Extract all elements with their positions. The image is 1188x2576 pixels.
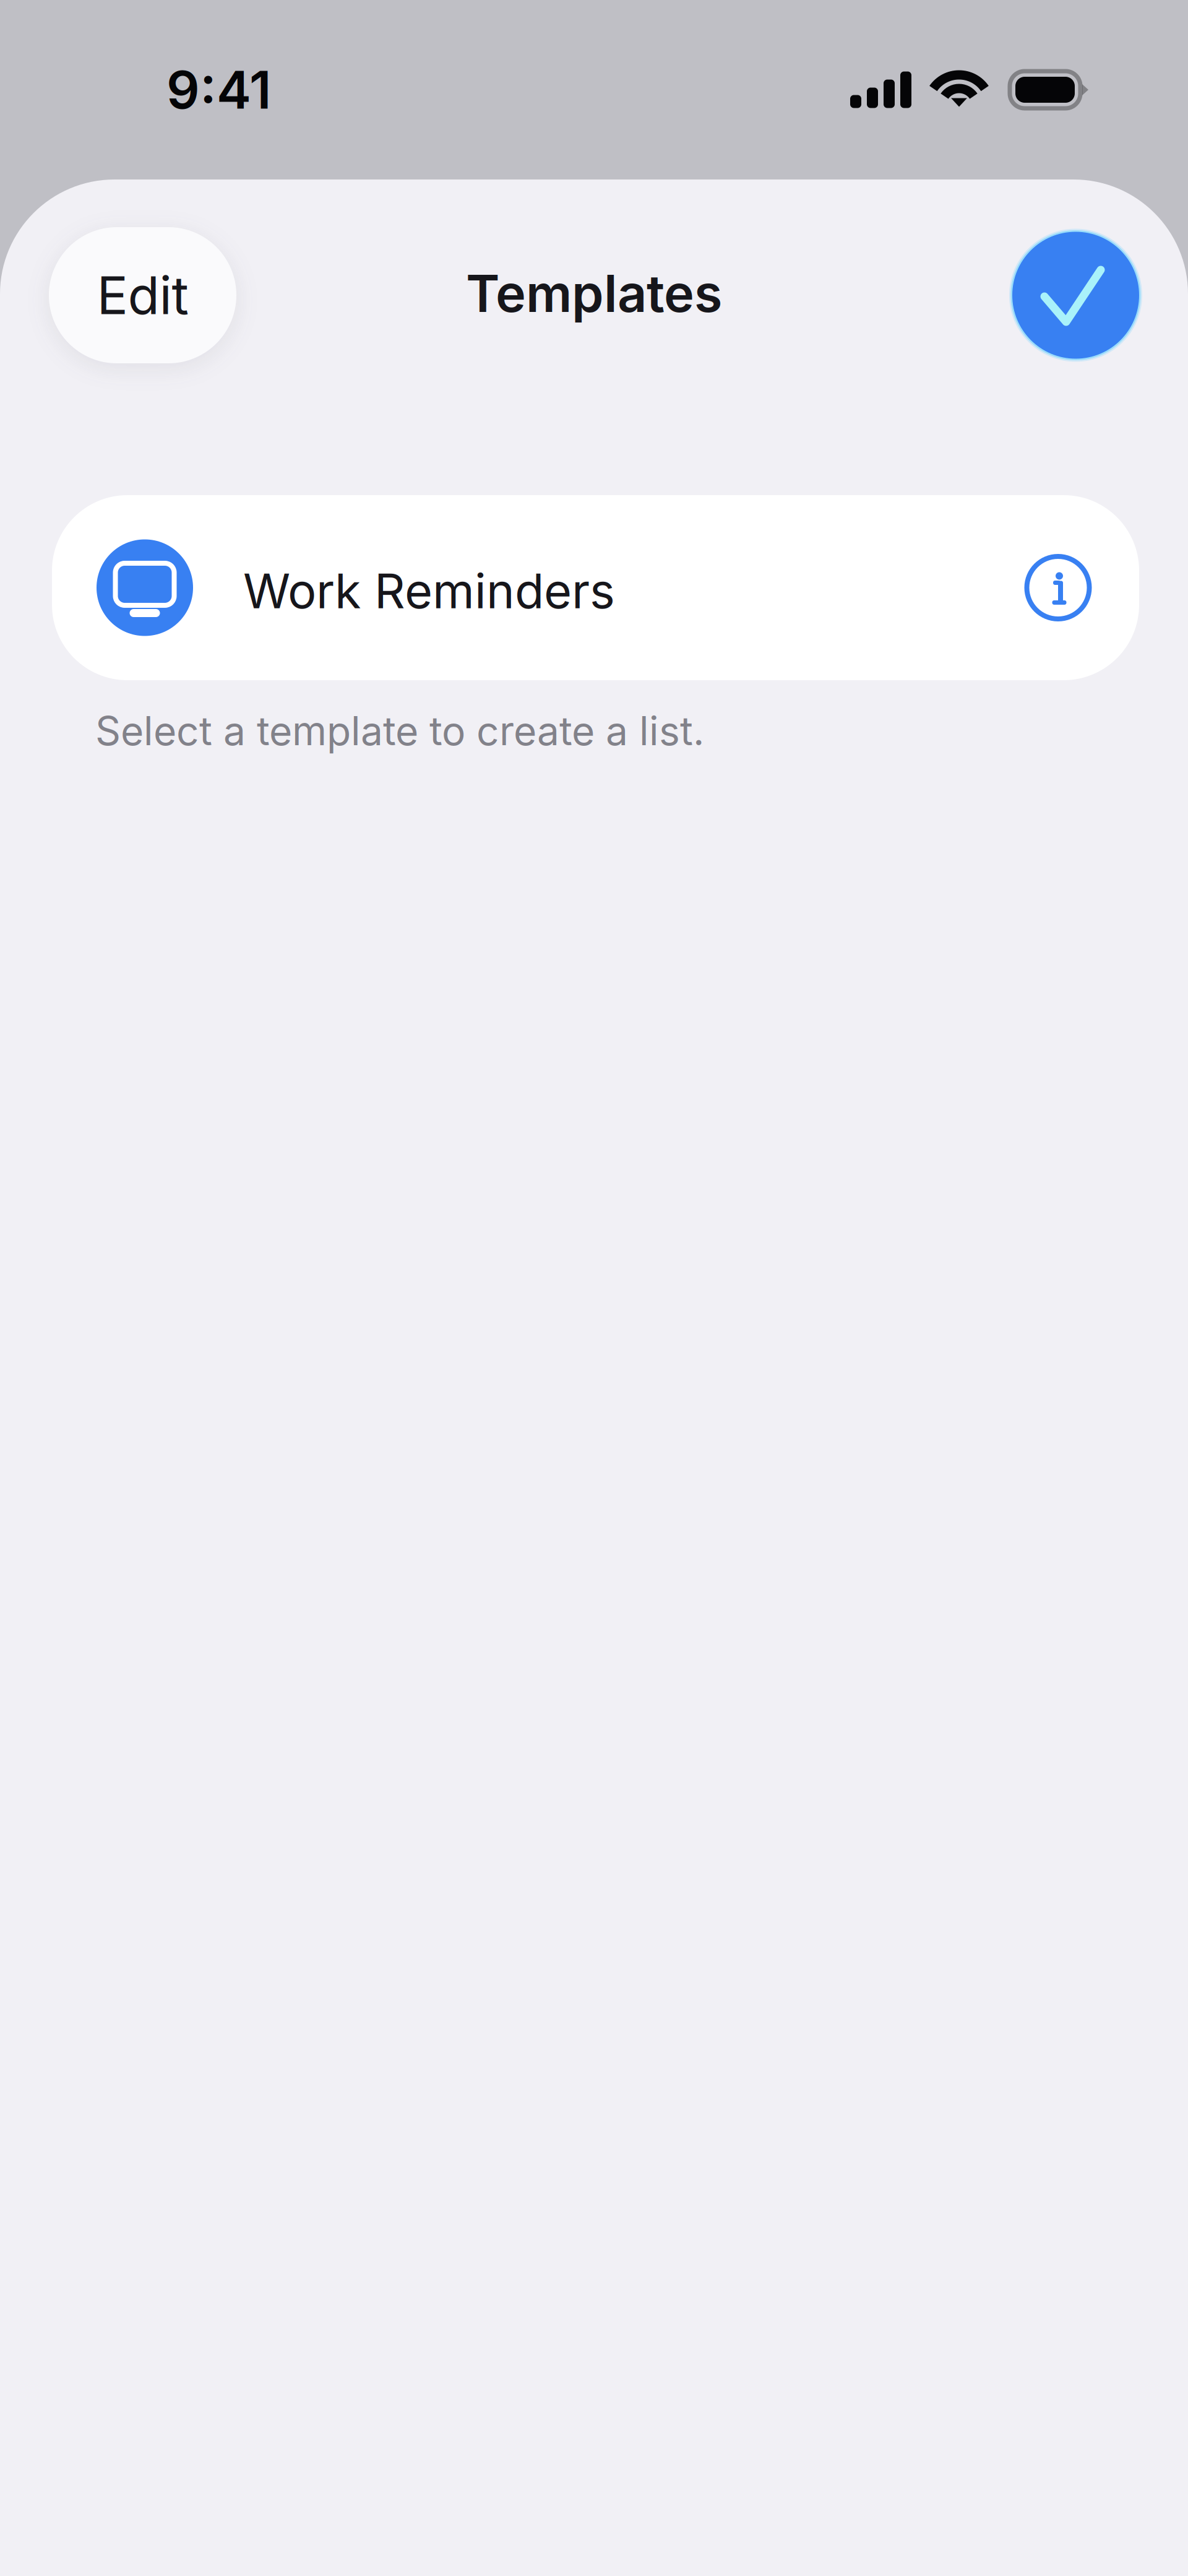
- staticText: Edit: [97, 264, 188, 327]
- staticText: Work Reminders: [243, 562, 615, 620]
- button[interactable]: More info: [977, 495, 1139, 680]
- button[interactable]: Edit: [49, 227, 236, 363]
- staticText: Select a template to create a list.: [95, 707, 704, 755]
- staticText: Templates: [466, 262, 722, 324]
- button[interactable]: Done: [1009, 229, 1142, 362]
- button[interactable]: Work Reminders: [52, 495, 977, 680]
- staticText: 9:41: [166, 58, 272, 121]
